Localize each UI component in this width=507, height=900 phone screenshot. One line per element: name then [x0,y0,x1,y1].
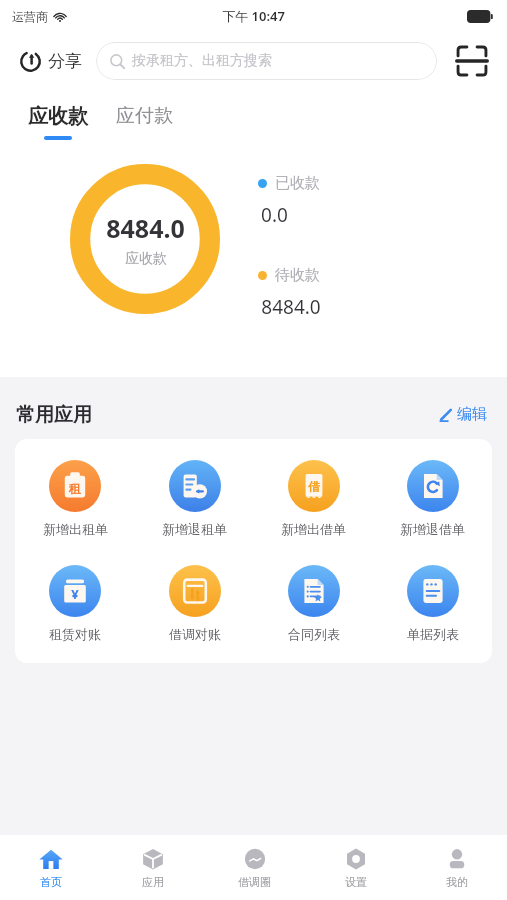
button[interactable]: 按承租方、出租方搜索 [96,42,437,80]
staticText: 应收款 [125,250,167,268]
button[interactable]: 设置 [305,840,406,895]
staticText: 借调圈 [238,875,271,889]
staticText: 已收款 [275,174,320,193]
staticText: 应用 [142,875,164,889]
staticText: 租赁对账 [49,626,101,642]
button[interactable]: 单据列表 [373,560,492,647]
staticText: 新增出借单 [281,521,346,537]
button[interactable]: 我的 [406,840,507,895]
staticText: 新增退租单 [162,521,227,537]
button[interactable]: 应付款 [114,104,175,128]
staticText: 0.0 [261,202,288,228]
staticText: 下午 10:47 [222,7,285,25]
staticText: 租 [69,481,81,496]
staticText: 合同列表 [288,626,340,642]
button[interactable]: 借 [254,455,373,542]
staticText: 应付款 [116,104,173,128]
staticText: 借调对账 [169,626,221,642]
button[interactable]: 应用 [102,840,204,895]
button[interactable]: ¥ [15,560,135,647]
button[interactable]: 编辑 [434,402,491,427]
button[interactable]: 合同列表 [254,560,373,647]
button[interactable]: Scan QR code [451,40,493,82]
staticText: 8484.0 [261,294,321,320]
staticText: ¥ [71,585,79,603]
staticText: 常用应用 [16,403,92,427]
staticText: 按承租方、出租方搜索 [132,52,272,70]
staticText: 新增出租单 [43,521,108,537]
staticText: 新增退借单 [400,521,465,537]
button[interactable]: 首页 [0,840,102,895]
staticText: 首页 [40,875,62,889]
staticText: 待收款 [275,266,320,285]
staticText: 运营商 [12,9,48,24]
staticText: 借 [308,479,320,494]
button[interactable]: 新增退租单 [135,455,254,542]
button[interactable]: 借调圈 [204,840,305,895]
staticText: 分享 [48,51,82,72]
staticText: 编辑 [457,405,487,424]
button[interactable]: 租 [15,455,135,542]
staticText: 应收款 [28,104,88,129]
button[interactable]: 借调对账 [135,560,254,647]
button[interactable]: 新增退借单 [373,455,492,542]
staticText: 我的 [446,875,468,889]
staticText: 8484.0 [106,211,185,245]
button[interactable]: 分享 [16,45,84,78]
staticText: 单据列表 [407,626,459,642]
button[interactable]: 应收款 [26,104,90,140]
staticText: 设置 [345,875,367,889]
